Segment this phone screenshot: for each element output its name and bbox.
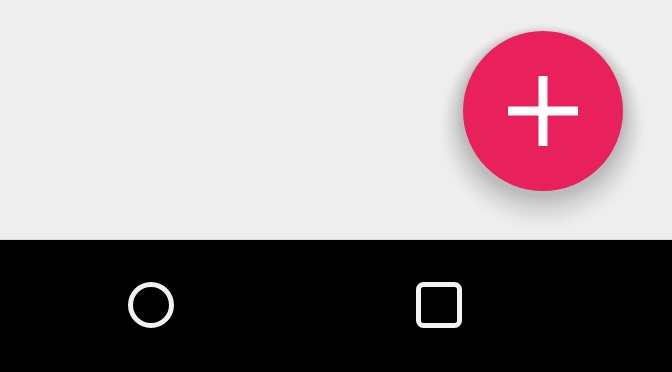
button[interactable]: Home: [110, 264, 191, 345]
button[interactable]: Recent apps: [398, 264, 479, 345]
button[interactable]: Add: [463, 31, 623, 191]
